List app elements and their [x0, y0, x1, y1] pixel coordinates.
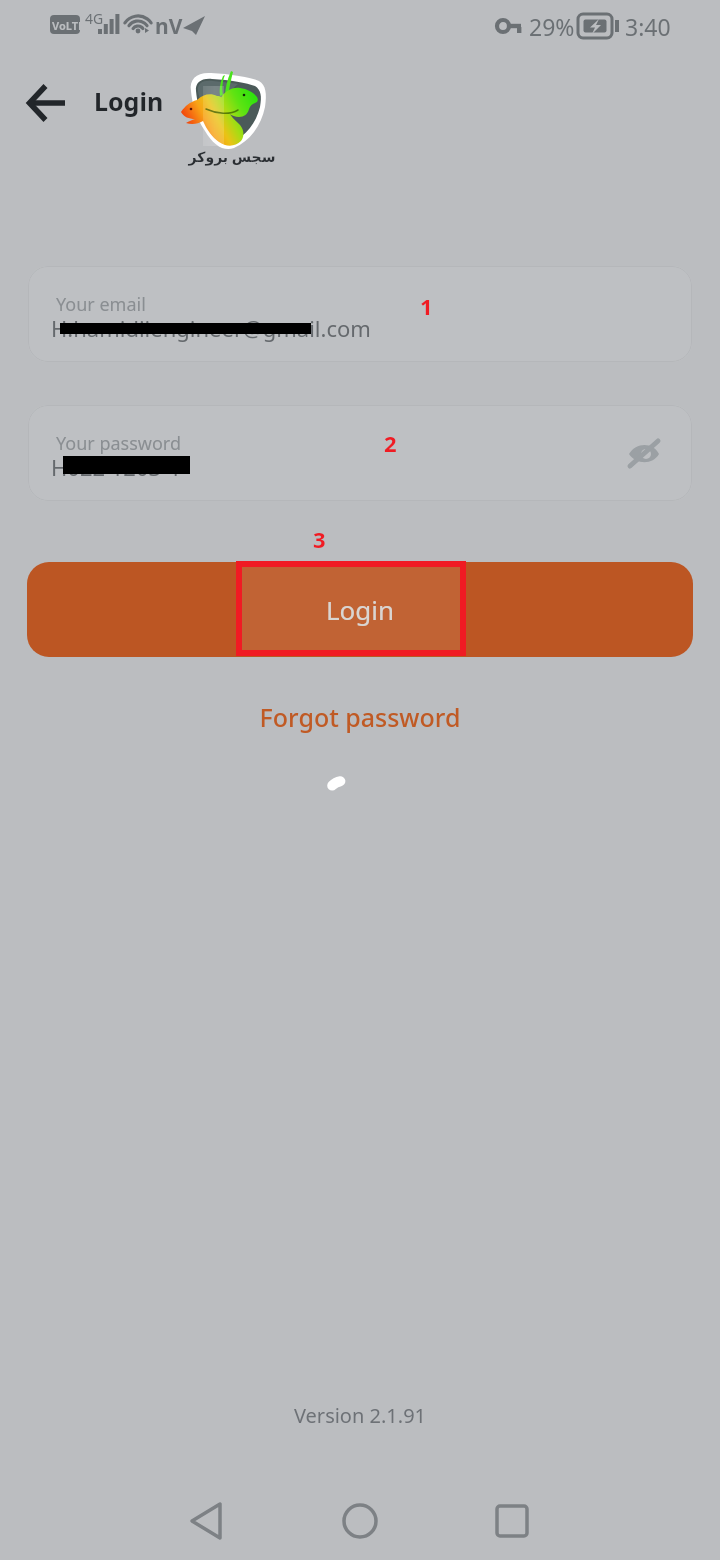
staticText: Login	[326, 592, 395, 627]
staticText: H.hamidiiengineer@gmail.com	[51, 313, 371, 343]
staticText: سجس بروکر	[183, 147, 281, 166]
staticText: 4G	[85, 9, 104, 28]
button[interactable]: Your email	[28, 266, 692, 362]
staticText: nV	[155, 12, 183, 41]
staticText: H022 1203 4	[51, 452, 180, 482]
button[interactable]: Home	[320, 1481, 400, 1560]
button[interactable]: Recent apps	[472, 1481, 552, 1560]
staticText: VoLTE	[52, 18, 85, 33]
staticText: 2	[384, 428, 397, 458]
button[interactable]: Login	[27, 562, 693, 657]
staticText: 29%	[529, 11, 575, 42]
button[interactable]: Forgot password	[0, 700, 720, 734]
staticText: 3	[313, 524, 326, 554]
staticText: Version 2.1.91	[0, 1402, 720, 1429]
button[interactable]: Show password	[616, 425, 672, 481]
staticText: Login	[94, 84, 164, 118]
staticText: Your email	[56, 292, 146, 317]
staticText: 1	[420, 291, 433, 321]
other: Loading	[318, 773, 366, 821]
staticText: Your password	[56, 431, 182, 456]
button[interactable]: Back	[17, 73, 77, 133]
button[interactable]: Your password	[28, 405, 692, 501]
button[interactable]: Back	[166, 1481, 246, 1560]
staticText: 3:40	[625, 11, 671, 42]
